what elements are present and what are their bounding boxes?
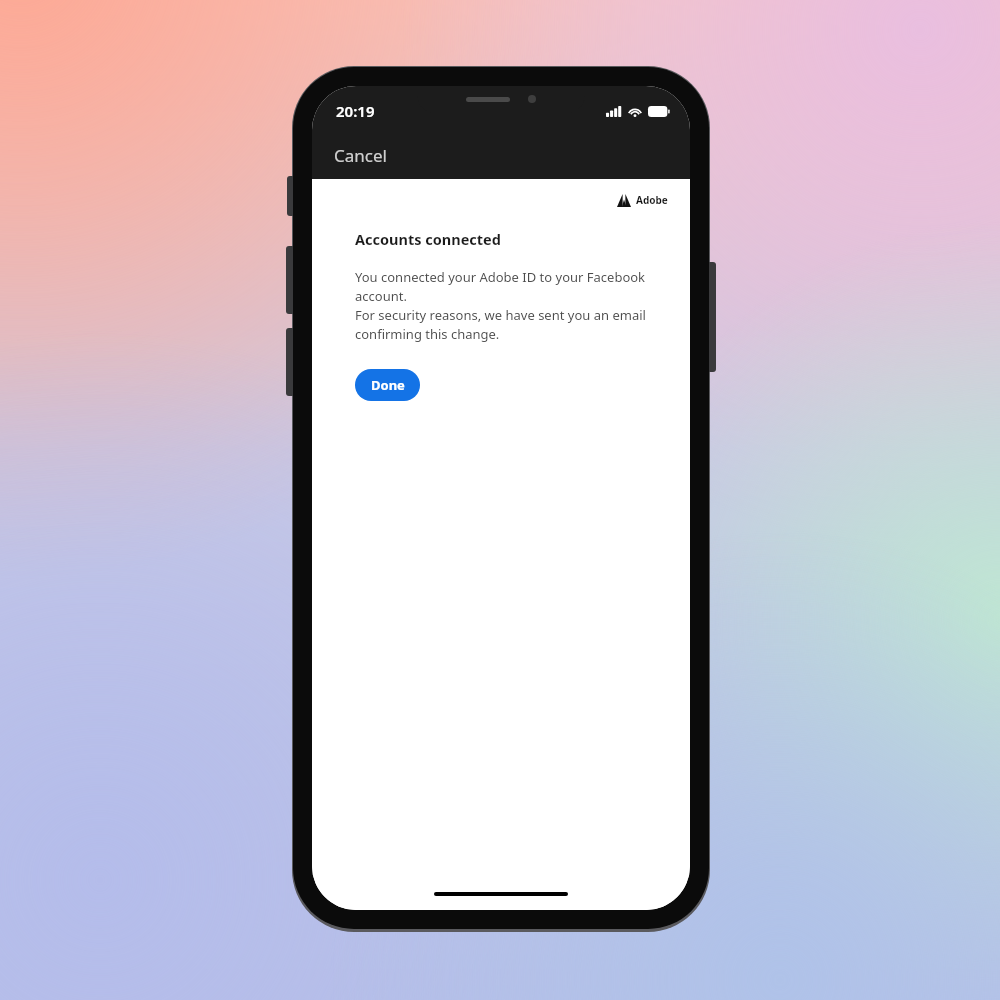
button[interactable]: Done	[355, 369, 420, 401]
staticText: Cancel	[334, 144, 387, 167]
staticText: Accounts connected	[355, 229, 501, 249]
other: Cellular signal	[606, 106, 622, 117]
other: Battery	[648, 106, 670, 117]
other: Wi-Fi	[628, 106, 642, 117]
staticText: You connected your Adobe ID to your Face…	[355, 268, 646, 343]
button[interactable]: Cancel	[312, 136, 409, 179]
staticText: 20:19	[336, 101, 375, 121]
staticText: Adobe	[636, 193, 668, 207]
staticText: Done	[371, 376, 405, 394]
